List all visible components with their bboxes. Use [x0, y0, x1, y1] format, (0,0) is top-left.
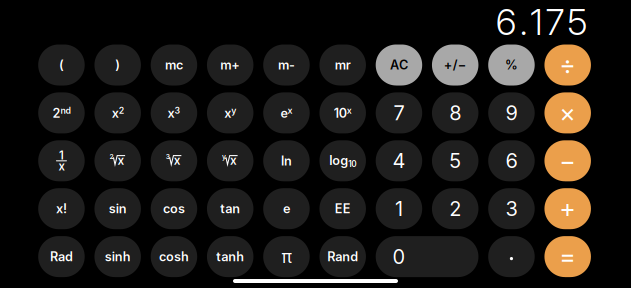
- button[interactable]: (: [38, 44, 85, 85]
- button[interactable]: 2nd: [38, 92, 85, 133]
- button[interactable]: ex: [263, 92, 310, 133]
- button[interactable]: e: [263, 188, 310, 229]
- staticText: (: [59, 57, 64, 73]
- button[interactable]: mc: [151, 44, 197, 85]
- button[interactable]: 1: [376, 188, 422, 229]
- staticText: 7: [546, 0, 565, 44]
- button[interactable]: x3: [151, 92, 197, 133]
- staticText: +/−: [444, 57, 467, 73]
- staticText: sinh: [105, 249, 131, 264]
- button[interactable]: 10x: [319, 92, 366, 133]
- button[interactable]: −: [544, 140, 591, 181]
- staticText: m+: [220, 57, 240, 73]
- button[interactable]: 7: [376, 92, 422, 133]
- staticText: sin: [109, 201, 127, 216]
- staticText: π: [281, 246, 291, 267]
- staticText: 4: [392, 149, 405, 173]
- staticText: cosh: [159, 249, 189, 264]
- button[interactable]: sinh: [94, 236, 141, 277]
- button[interactable]: +: [544, 188, 591, 229]
- button[interactable]: 8: [432, 92, 478, 133]
- staticText: EE: [335, 201, 351, 216]
- staticText: 5: [567, 0, 587, 44]
- staticText: ×: [559, 98, 576, 128]
- button[interactable]: 2: [432, 188, 478, 229]
- button[interactable]: m-: [263, 44, 310, 85]
- staticText: 2nd: [52, 105, 70, 121]
- staticText: x2: [112, 105, 124, 121]
- button[interactable]: log base 10: [319, 140, 366, 181]
- button[interactable]: cube root: [151, 140, 197, 181]
- button[interactable]: 6: [488, 140, 535, 181]
- staticText: =: [559, 241, 576, 272]
- staticText: 1: [530, 0, 543, 44]
- button[interactable]: decimal point: [488, 236, 535, 277]
- staticText: .: [519, 0, 527, 44]
- staticText: xy: [224, 105, 236, 121]
- staticText: AC: [390, 57, 408, 73]
- button[interactable]: mr: [319, 44, 366, 85]
- button[interactable]: EE: [319, 188, 366, 229]
- button[interactable]: ): [94, 44, 141, 85]
- staticText: ex: [280, 105, 292, 121]
- staticText: m-: [278, 57, 295, 73]
- staticText: 1: [395, 197, 403, 221]
- button[interactable]: square root: [94, 140, 141, 181]
- staticText: −: [559, 145, 576, 176]
- staticText: x: [230, 153, 237, 167]
- staticText: 0: [392, 244, 405, 269]
- staticText: x!: [56, 201, 67, 216]
- button[interactable]: y root: [207, 140, 253, 181]
- staticText: 3: [166, 153, 170, 161]
- button[interactable]: cos: [151, 188, 197, 229]
- staticText: 5: [449, 149, 461, 173]
- staticText: x3: [167, 105, 180, 121]
- staticText: ln: [281, 153, 292, 168]
- button[interactable]: 5: [432, 140, 478, 181]
- button[interactable]: Rand: [319, 236, 366, 277]
- button[interactable]: cosh: [151, 236, 197, 277]
- staticText: ): [115, 57, 120, 73]
- button[interactable]: x2: [94, 92, 141, 133]
- button[interactable]: +/−: [432, 44, 478, 85]
- staticText: mc: [165, 57, 183, 73]
- staticText: 2: [449, 197, 461, 221]
- staticText: 9: [505, 101, 517, 125]
- staticText: tanh: [216, 249, 244, 264]
- staticText: log10: [329, 153, 356, 169]
- staticText: ÷: [559, 50, 576, 80]
- button[interactable]: 4: [376, 140, 422, 181]
- button[interactable]: tan: [207, 188, 253, 229]
- staticText: y: [222, 153, 226, 161]
- button[interactable]: 0: [376, 236, 478, 277]
- staticText: 1: [59, 148, 64, 162]
- button[interactable]: 3: [488, 188, 535, 229]
- staticText: 3: [505, 197, 517, 221]
- staticText: 8: [449, 101, 461, 125]
- button[interactable]: =: [544, 236, 591, 277]
- staticText: 6: [505, 149, 517, 173]
- button[interactable]: ×: [544, 92, 591, 133]
- staticText: Rad: [50, 249, 73, 264]
- button[interactable]: x!: [38, 188, 85, 229]
- button[interactable]: m+: [207, 44, 253, 85]
- staticText: Rand: [327, 249, 358, 264]
- button[interactable]: one over x: [38, 140, 85, 181]
- button[interactable]: tanh: [207, 236, 253, 277]
- button[interactable]: xy: [207, 92, 253, 133]
- button[interactable]: sin: [94, 188, 141, 229]
- staticText: %: [505, 57, 518, 73]
- staticText: mr: [335, 57, 351, 73]
- button[interactable]: ln: [263, 140, 310, 181]
- staticText: +: [559, 193, 576, 224]
- button[interactable]: 9: [488, 92, 535, 133]
- button[interactable]: AC: [376, 44, 422, 85]
- staticText: x: [117, 153, 124, 167]
- button[interactable]: %: [488, 44, 535, 85]
- staticText: x: [174, 153, 181, 167]
- staticText: cos: [163, 201, 185, 216]
- staticText: tan: [220, 201, 240, 216]
- button[interactable]: ÷: [544, 44, 591, 85]
- button[interactable]: Rad: [38, 236, 85, 277]
- button[interactable]: π: [263, 236, 310, 277]
